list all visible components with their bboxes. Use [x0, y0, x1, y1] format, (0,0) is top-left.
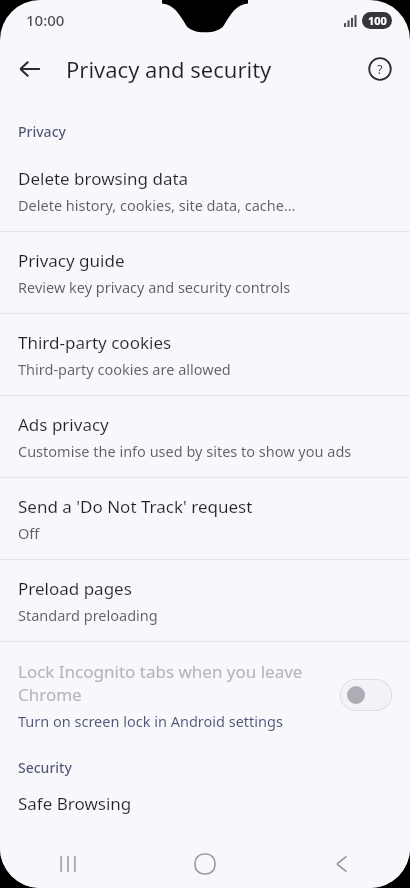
- button[interactable]: Send a 'Do Not Track' request: [0, 478, 410, 559]
- staticText: Customise the info used by sites to show…: [18, 441, 352, 461]
- button[interactable]: Third-party cookies: [0, 314, 410, 395]
- staticText: Turn on screen lock in Android settings: [18, 711, 283, 731]
- button[interactable]: Lock Incognito tabs when you leave Chrom…: [0, 642, 410, 748]
- staticText: Off: [18, 523, 40, 543]
- staticText: ?: [377, 60, 383, 78]
- button[interactable]: Help and feedback: [360, 49, 400, 89]
- button[interactable]: Preload pages: [0, 560, 410, 641]
- staticText: Delete browsing data: [18, 167, 189, 190]
- staticText: 10:00: [26, 10, 65, 30]
- staticText: Delete history, cookies, site data, cach…: [18, 195, 296, 215]
- button[interactable]: Safe Browsing: [0, 786, 410, 816]
- button[interactable]: Navigate up: [8, 47, 52, 91]
- button[interactable]: Delete browsing data: [0, 150, 410, 231]
- staticText: Third-party cookies: [18, 331, 172, 354]
- staticText: Privacy: [18, 122, 66, 141]
- button[interactable]: Ads privacy: [0, 396, 410, 477]
- staticText: Privacy and security: [66, 54, 272, 84]
- staticText: Safe Browsing: [18, 792, 132, 815]
- button[interactable]: Lock Incognito tabs toggle: [340, 679, 392, 711]
- staticText: Lock Incognito tabs when you leave Chrom…: [18, 660, 303, 706]
- button[interactable]: Back: [273, 840, 410, 888]
- staticText: Send a 'Do Not Track' request: [18, 495, 253, 518]
- staticText: Security: [18, 758, 72, 777]
- staticText: Review key privacy and security controls: [18, 277, 291, 297]
- staticText: 100: [368, 13, 387, 28]
- staticText: Third-party cookies are allowed: [18, 359, 231, 379]
- staticText: Privacy guide: [18, 249, 125, 272]
- button[interactable]: Privacy guide: [0, 232, 410, 313]
- staticText: Ads privacy: [18, 413, 109, 436]
- button[interactable]: Home: [136, 840, 273, 888]
- staticText: Preload pages: [18, 577, 132, 600]
- button[interactable]: Recent apps: [0, 840, 136, 888]
- staticText: Standard preloading: [18, 605, 158, 625]
